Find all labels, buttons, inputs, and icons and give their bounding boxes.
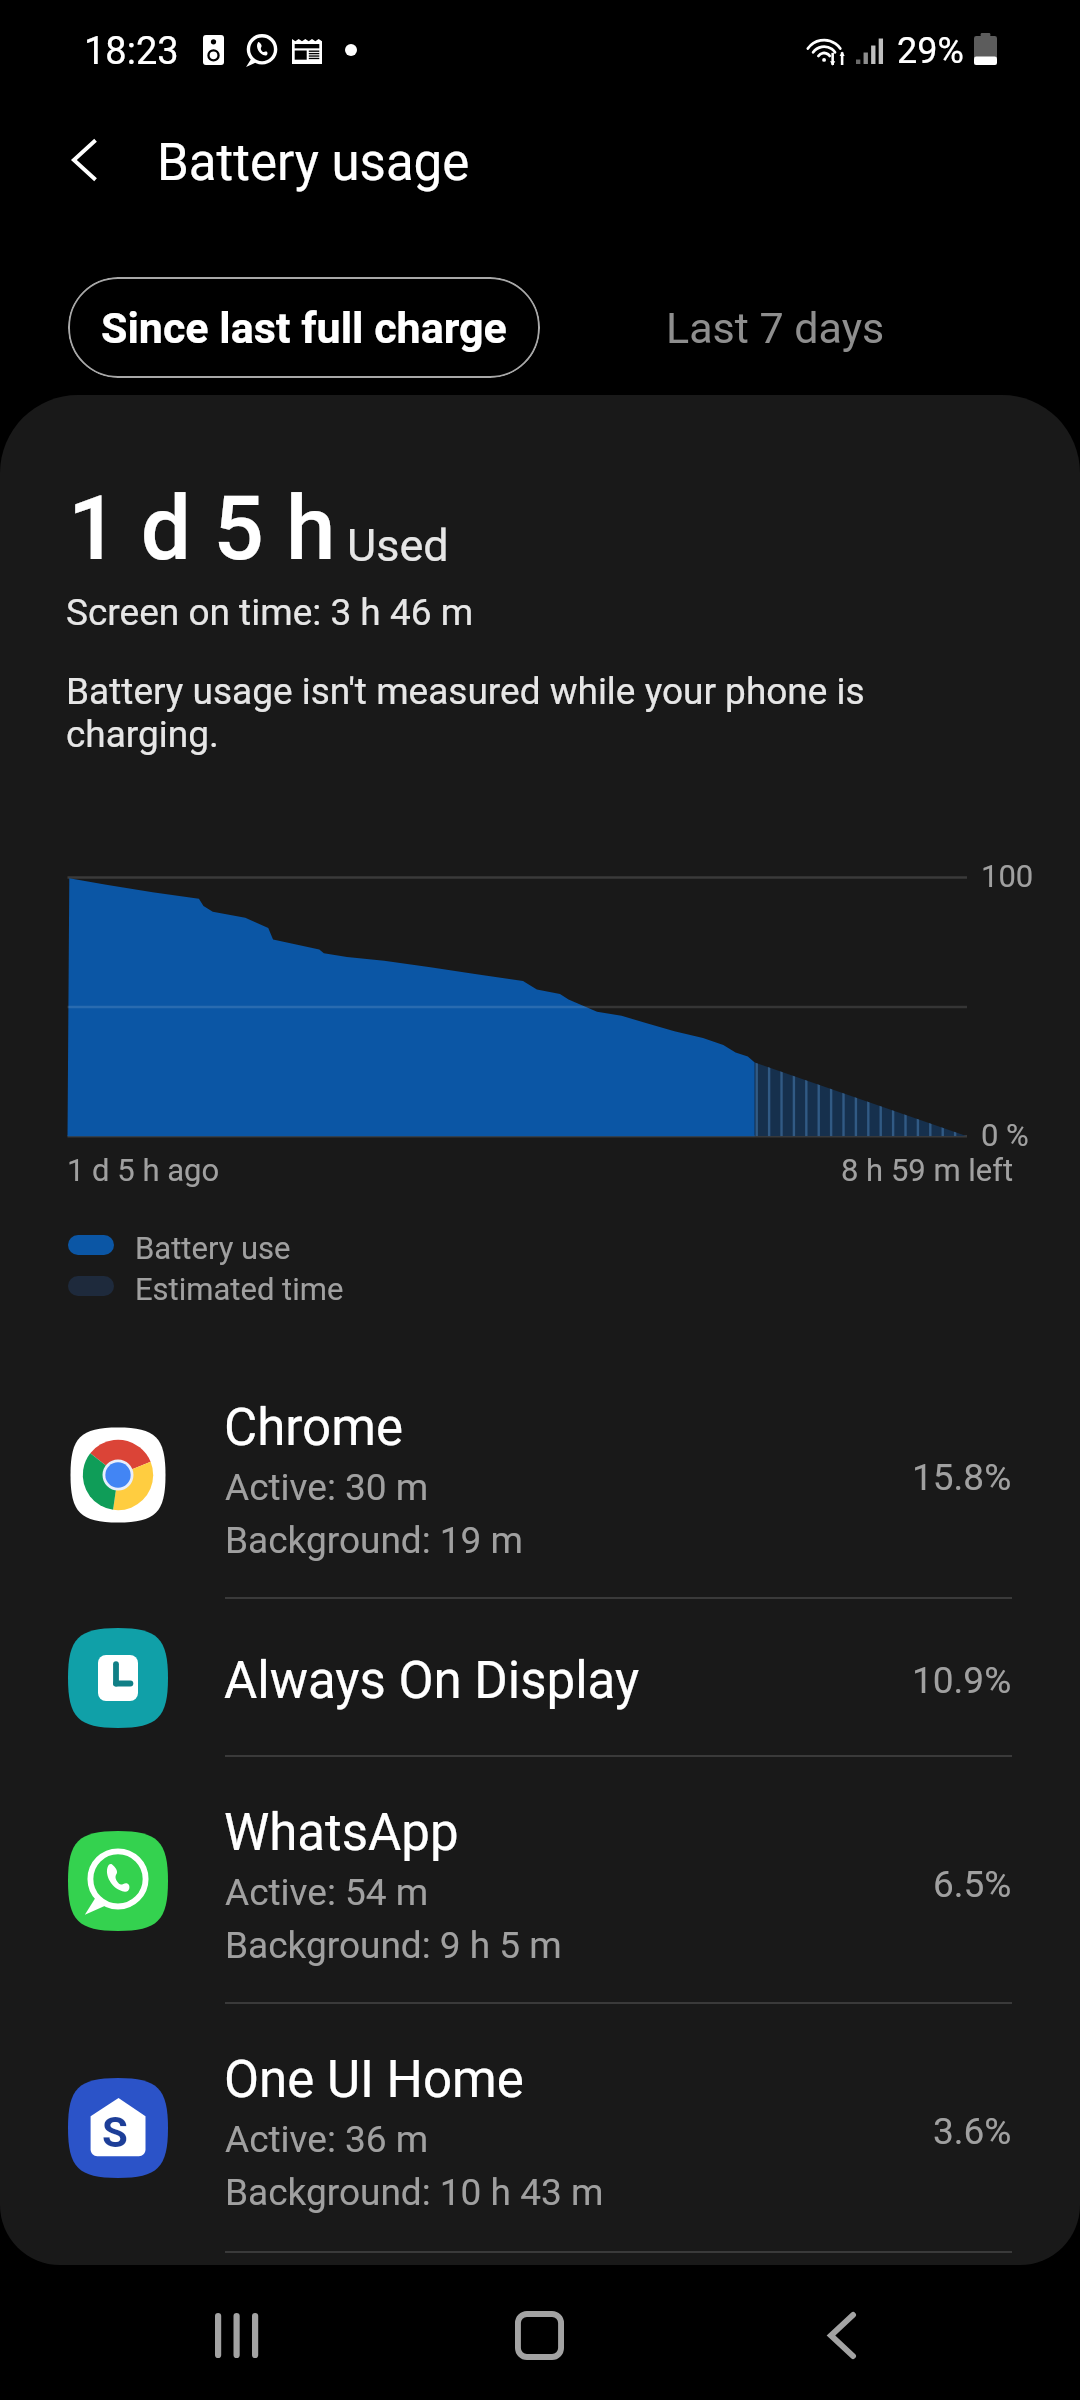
button[interactable]: Always On Display <box>0 1599 1080 1757</box>
button[interactable]: Back <box>787 2280 897 2390</box>
staticText: Last 7 days <box>666 303 885 353</box>
button[interactable]: Back <box>42 118 126 202</box>
button[interactable]: WhatsApp <box>0 1757 1080 2004</box>
staticText: Chrome <box>224 1398 403 1458</box>
staticText: Estimated time <box>135 1271 344 1307</box>
staticText: 1 d 5 h ago <box>67 1152 220 1188</box>
staticText: Screen on time: 3 h 46 m <box>66 591 474 634</box>
staticText: 0 % <box>981 1117 1029 1153</box>
staticText: 100 <box>981 858 1034 894</box>
staticText: Battery usage <box>157 133 470 193</box>
staticText: Active: 36 m <box>225 2118 429 2161</box>
staticText: Active: 54 m <box>225 1871 429 1914</box>
staticText: Battery use <box>135 1230 291 1266</box>
staticText: 3.6% <box>933 2110 1012 2153</box>
button[interactable]: Since last full charge <box>68 277 540 378</box>
staticText: WhatsApp <box>224 1803 459 1863</box>
staticText: Background: 10 h 43 m <box>225 2171 604 2214</box>
button[interactable]: Last 7 days <box>626 277 926 378</box>
button[interactable]: S <box>0 2004 1080 2253</box>
staticText: One UI Home <box>224 2050 524 2110</box>
staticText: Active: 30 m <box>225 1466 429 1509</box>
staticText: 29% <box>897 30 964 72</box>
staticText: 1 d 5 h <box>68 476 336 580</box>
staticText: 15.8% <box>912 1456 1012 1499</box>
button[interactable]: Chrome <box>0 1351 1080 1599</box>
staticText: Used <box>347 519 449 572</box>
staticText: 8 h 59 m left <box>841 1152 1014 1188</box>
staticText: 10.9% <box>912 1659 1012 1702</box>
staticText: Background: 9 h 5 m <box>225 1924 562 1967</box>
staticText: Background: 19 m <box>225 1519 524 1562</box>
staticText: Since last full charge <box>101 303 507 353</box>
staticText: Battery usage isn't measured while your … <box>66 670 865 756</box>
staticText: S <box>102 2108 128 2157</box>
staticText: 18:23 <box>84 29 179 74</box>
button[interactable]: Home <box>484 2280 594 2390</box>
staticText: Always On Display <box>224 1651 640 1711</box>
button[interactable]: Recent apps <box>182 2280 292 2390</box>
staticText: 6.5% <box>933 1863 1012 1906</box>
